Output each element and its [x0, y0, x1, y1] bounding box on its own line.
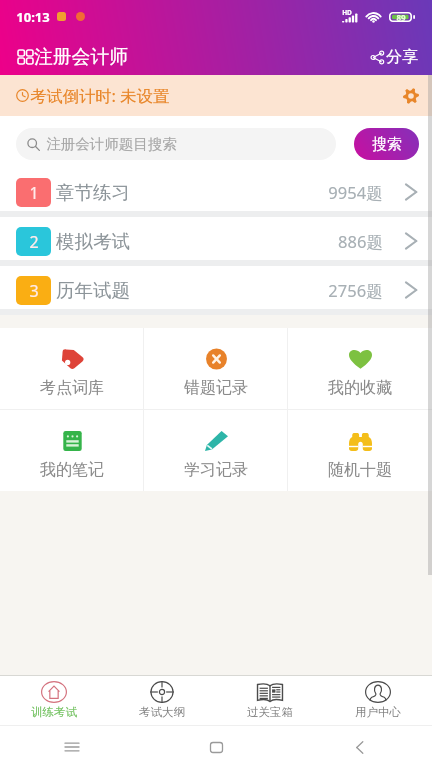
staticText: 我的笔记 — [40, 460, 104, 480]
button[interactable]: 3 — [0, 266, 432, 309]
button[interactable]: Recents — [0, 726, 144, 768]
button[interactable]: 考试大纲 — [108, 676, 216, 725]
button[interactable]: 1 — [0, 168, 432, 211]
staticText: 考点词库 — [40, 378, 104, 398]
staticText: 考试大纲 — [139, 705, 185, 719]
button[interactable]: 2 — [0, 217, 432, 260]
staticText: 3 — [29, 280, 39, 302]
button[interactable]: 考点词库 — [0, 328, 144, 409]
staticText: 注册会计师题目搜索 — [46, 135, 177, 153]
staticText: 搜索 — [372, 135, 402, 154]
staticText: 2756题 — [328, 279, 383, 302]
button[interactable]: 随机十题 — [288, 410, 432, 491]
staticText: 9954题 — [328, 181, 383, 204]
staticText: 用户中心 — [355, 705, 401, 719]
staticText: 1 — [29, 182, 39, 204]
button[interactable]: 学习记录 — [144, 410, 288, 491]
button[interactable]: 分享 — [365, 43, 419, 71]
button[interactable]: 训练考试 — [0, 676, 108, 725]
staticText: 89 — [396, 12, 406, 22]
staticText: 注册会计师 — [34, 45, 128, 69]
staticText: 历年试题 — [56, 279, 130, 302]
button[interactable]: 过关宝箱 — [216, 676, 324, 725]
staticText: 错题记录 — [184, 378, 248, 398]
staticText: 过关宝箱 — [247, 705, 293, 719]
button[interactable]: Back — [288, 726, 432, 768]
button[interactable]: 注册会计师题目搜索 — [16, 128, 336, 160]
staticText: 章节练习 — [56, 181, 130, 204]
staticText: 分享 — [386, 47, 418, 67]
button[interactable]: 错题记录 — [144, 328, 288, 409]
button[interactable]: 用户中心 — [324, 676, 432, 725]
button[interactable]: 我的收藏 — [288, 328, 432, 409]
staticText: 模拟考试 — [56, 230, 130, 253]
staticText: HD — [342, 8, 352, 17]
staticText: 随机十题 — [328, 460, 392, 480]
staticText: 学习记录 — [184, 460, 248, 480]
staticText: 我的收藏 — [328, 378, 392, 398]
button[interactable]: 我的笔记 — [0, 410, 144, 491]
staticText: 10:13 — [16, 8, 50, 26]
staticText: 考试倒计时: 未设置 — [30, 85, 169, 107]
button[interactable]: 搜索 — [354, 128, 419, 160]
staticText: 886题 — [338, 230, 383, 253]
staticText: 2 — [29, 231, 39, 253]
button[interactable]: 考试倒计时: 未设置 — [0, 75, 432, 116]
staticText: 训练考试 — [31, 705, 77, 719]
button[interactable]: Home — [144, 726, 288, 768]
button[interactable]: Settings — [399, 84, 423, 108]
